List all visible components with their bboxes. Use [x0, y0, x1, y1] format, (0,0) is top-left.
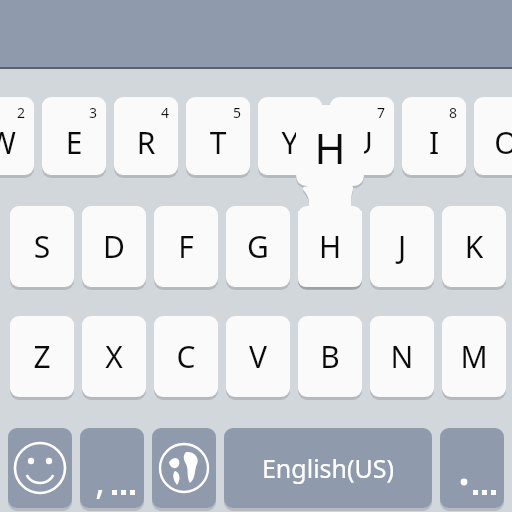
button[interactable]: D: [82, 206, 146, 287]
button[interactable]: Space English US: [224, 428, 432, 508]
button[interactable]: M: [442, 316, 506, 397]
button[interactable]: C: [154, 316, 218, 397]
button[interactable]: Emoji: [8, 428, 72, 508]
button[interactable]: O: [474, 97, 512, 175]
button[interactable]: Y: [258, 97, 322, 175]
button[interactable]: T: [186, 97, 250, 175]
button[interactable]: I: [402, 97, 466, 175]
button[interactable]: W: [0, 97, 34, 175]
button[interactable]: X: [82, 316, 146, 397]
button[interactable]: B: [298, 316, 362, 397]
button[interactable]: G: [226, 206, 290, 287]
button[interactable]: R: [114, 97, 178, 175]
button[interactable]: E: [42, 97, 106, 175]
button[interactable]: Period: [440, 428, 504, 508]
button[interactable]: N: [370, 316, 434, 397]
button[interactable]: U: [330, 97, 394, 175]
button[interactable]: J: [370, 206, 434, 287]
button[interactable]: Z: [10, 316, 74, 397]
button[interactable]: V: [226, 316, 290, 397]
button[interactable]: Comma: [80, 428, 144, 508]
button[interactable]: Change language: [152, 428, 216, 508]
button[interactable]: F: [154, 206, 218, 287]
button[interactable]: K: [442, 206, 506, 287]
button[interactable]: S: [10, 206, 74, 287]
button[interactable]: H: [298, 206, 362, 287]
